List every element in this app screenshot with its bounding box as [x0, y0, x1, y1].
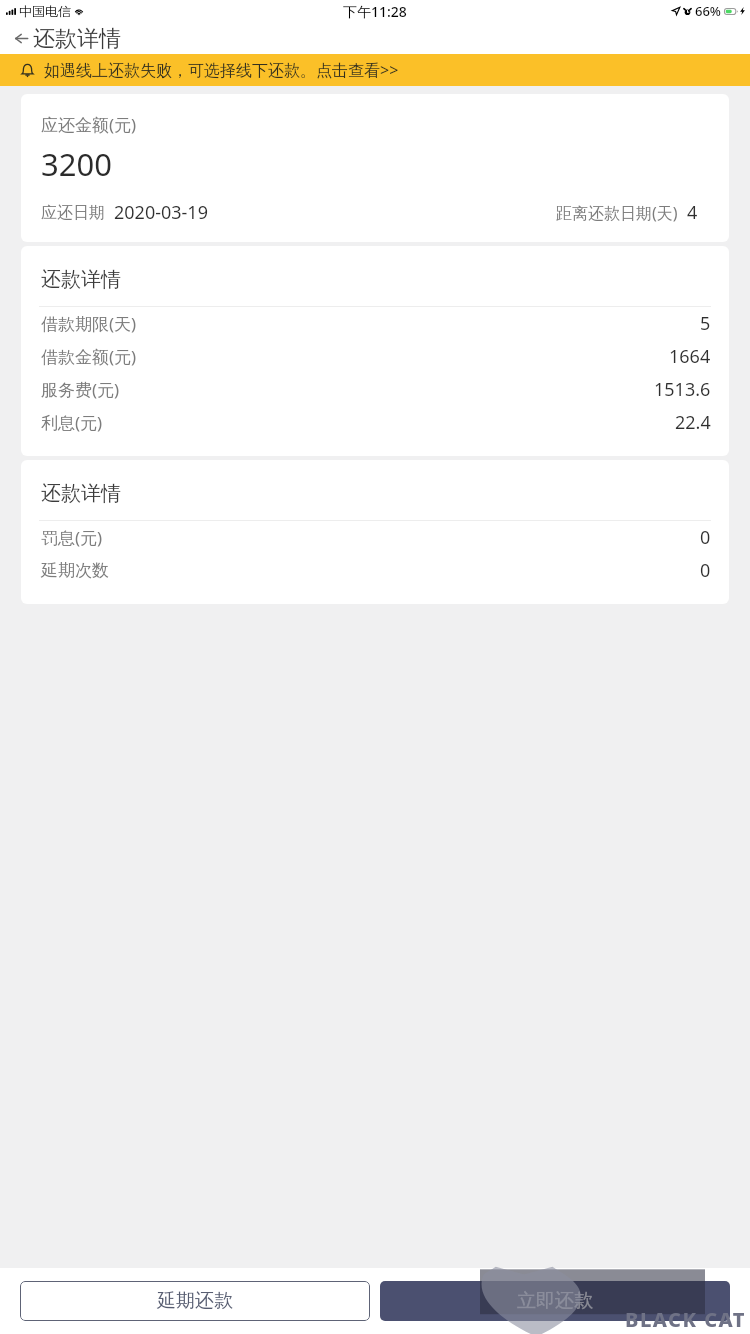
staticText: 1664: [669, 344, 711, 369]
staticText: 距离还款日期(天): [556, 202, 678, 224]
staticText: 借款期限(天): [41, 312, 137, 335]
staticText: 延期次数: [41, 560, 109, 581]
staticText: 中国电信: [19, 3, 71, 19]
button[interactable]: Back: [0, 22, 131, 54]
staticText: BLACK CAT: [625, 1306, 746, 1333]
staticText: 2020-03-19: [114, 200, 208, 225]
staticText: 延期还款: [157, 1289, 233, 1313]
staticText: 4: [687, 200, 698, 225]
staticText: 立即还款: [517, 1289, 593, 1313]
staticText: 还款详情: [41, 267, 121, 292]
staticText: 借款金额(元): [41, 345, 137, 368]
staticText: 1513.6: [654, 377, 711, 402]
staticText: 利息(元): [41, 411, 103, 434]
staticText: 0: [700, 558, 711, 583]
staticText: 5: [700, 311, 711, 336]
staticText: 罚息(元): [41, 526, 103, 549]
button[interactable]: 立即还款: [380, 1281, 730, 1321]
staticText: 如遇线上还款失败，可选择线下还款。点击查看>>: [44, 59, 399, 81]
staticText: 还款详情: [41, 481, 121, 506]
staticText: 应还日期: [41, 203, 105, 223]
staticText: 应还金额(元): [41, 113, 137, 136]
staticText: 3200: [41, 143, 112, 185]
staticText: 还款详情: [33, 25, 121, 51]
button[interactable]: 延期还款: [20, 1281, 370, 1321]
staticText: 下午11:28: [343, 2, 407, 21]
staticText: 0: [700, 525, 711, 550]
staticText: 服务费(元): [41, 378, 120, 401]
button[interactable]: 如遇线上还款失败，可选择线下还款。点击查看>>: [0, 54, 750, 86]
staticText: 66%: [695, 2, 721, 20]
staticText: 22.4: [675, 410, 711, 435]
